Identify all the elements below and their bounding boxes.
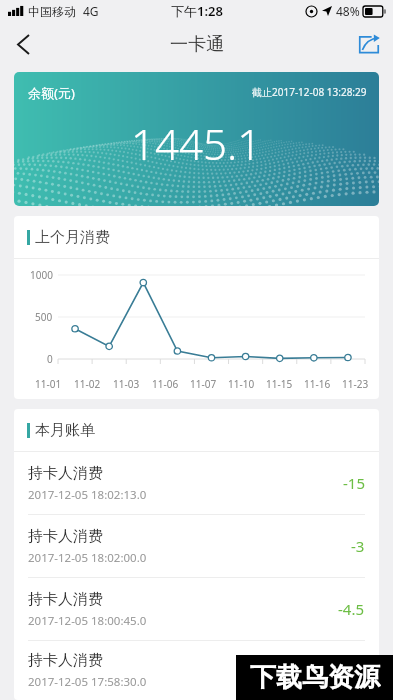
staticText: 持卡人消费 xyxy=(28,464,103,483)
staticText: 2017-12-05 18:00:45.0 xyxy=(28,613,147,629)
button[interactable]: Share xyxy=(345,22,393,66)
staticText: 下午1:28 xyxy=(171,2,223,20)
staticText: 500 xyxy=(35,310,53,324)
staticText: -4.5 xyxy=(338,599,365,619)
staticText: 48% xyxy=(336,3,360,19)
button[interactable]: 余额(元) xyxy=(14,72,379,206)
staticText: 11-03 xyxy=(113,377,140,391)
staticText: 2017-12-05 18:02:00.0 xyxy=(28,550,147,566)
staticText: 4G xyxy=(83,3,99,19)
staticText: 持卡人消费 xyxy=(28,651,103,670)
staticText: 一卡通 xyxy=(170,33,224,56)
staticText: 中国移动 xyxy=(28,4,76,19)
staticText: 上个月消费 xyxy=(35,228,110,247)
staticText: 11-16 xyxy=(304,377,331,391)
staticText: 余额(元) xyxy=(28,84,75,102)
staticText: 持卡人消费 xyxy=(28,527,103,546)
staticText: -3.5 xyxy=(338,661,365,681)
button[interactable]: 持卡人消费 xyxy=(14,641,379,700)
staticText: 11-23 xyxy=(342,377,369,391)
button[interactable]: Back xyxy=(0,22,46,66)
staticText: -15 xyxy=(343,473,365,493)
staticText: 1445.1 xyxy=(131,115,262,172)
button[interactable]: 持卡人消费 xyxy=(14,515,379,577)
staticText: 2017-12-05 18:02:13.0 xyxy=(28,487,147,503)
staticText: 11-07 xyxy=(190,377,217,391)
staticText: 1000 xyxy=(30,268,53,282)
staticText: 本月账单 xyxy=(35,421,95,440)
staticText: 11-01 xyxy=(35,377,62,391)
staticText: 截止2017-12-08 13:28:29 xyxy=(252,85,367,99)
staticText: 0 xyxy=(47,352,53,366)
button[interactable]: 持卡人消费 xyxy=(14,578,379,640)
staticText: 11-02 xyxy=(74,377,101,391)
staticText: 11-15 xyxy=(266,377,293,391)
staticText: 11-10 xyxy=(228,377,255,391)
staticText: -3 xyxy=(351,536,365,556)
button[interactable]: 持卡人消费 xyxy=(14,452,379,514)
staticText: 11-06 xyxy=(152,377,179,391)
staticText: 持卡人消费 xyxy=(28,590,103,609)
staticText: 2017-12-05 17:58:30.0 xyxy=(28,674,147,690)
staticText: 下载鸟资源 xyxy=(250,661,380,694)
